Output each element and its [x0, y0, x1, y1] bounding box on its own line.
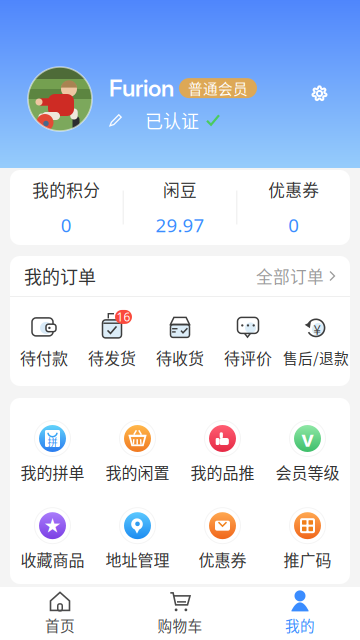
- button[interactable]: 待付款: [10, 314, 78, 369]
- button[interactable]: 首页: [0, 584, 120, 640]
- staticText: 待评价: [224, 346, 272, 369]
- staticText: 待发货: [88, 346, 136, 369]
- staticText: 会员等级: [275, 460, 339, 484]
- button[interactable]: Settings: [310, 84, 329, 103]
- staticText: 推广码: [283, 548, 331, 571]
- button[interactable]: 全部订单: [256, 264, 336, 288]
- staticText: Furion: [109, 74, 174, 102]
- button[interactable]: 我的闲置: [95, 419, 180, 484]
- staticText: 待付款: [20, 346, 68, 369]
- button[interactable]: ★: [10, 507, 95, 571]
- staticText: ★: [43, 514, 61, 537]
- staticText: 0: [61, 213, 72, 237]
- button[interactable]: 推广码: [265, 507, 350, 571]
- staticText: 我的拼单: [20, 460, 84, 484]
- staticText: 优惠券: [268, 177, 319, 202]
- staticText: 普通会员: [188, 77, 248, 99]
- staticText: 购物车: [157, 614, 202, 636]
- staticText: 我的订单: [24, 263, 96, 289]
- staticText: 我的品推: [190, 460, 254, 484]
- staticText: 我的闲置: [105, 460, 169, 484]
- staticText: 0: [288, 213, 299, 237]
- staticText: 29.97: [155, 213, 204, 237]
- button[interactable]: 优惠券: [180, 507, 265, 571]
- button[interactable]: 待评价: [214, 314, 282, 369]
- staticText: 闲豆: [163, 177, 197, 202]
- button[interactable]: ¥: [282, 315, 350, 368]
- button[interactable]: 地址管理: [95, 507, 180, 571]
- button[interactable]: 优惠券: [237, 177, 350, 237]
- staticText: 我的: [285, 614, 315, 636]
- staticText: ¥: [313, 319, 320, 338]
- staticText: 地址管理: [105, 548, 169, 571]
- staticText: 全部订单: [256, 264, 324, 288]
- button[interactable]: 拼: [10, 419, 95, 484]
- button[interactable]: v: [265, 419, 350, 484]
- button[interactable]: 待收货: [146, 314, 214, 369]
- staticText: 16: [116, 309, 130, 325]
- button[interactable]: 我的积分: [10, 177, 123, 237]
- staticText: 售后/退款: [283, 347, 349, 368]
- staticText: 拼: [47, 435, 57, 449]
- staticText: 待收货: [156, 346, 204, 369]
- button[interactable]: 我的品推: [180, 419, 265, 484]
- staticText: 优惠券: [198, 548, 246, 571]
- button[interactable]: 我的: [240, 584, 360, 640]
- staticText: v: [301, 424, 313, 453]
- button[interactable]: 购物车: [120, 584, 240, 640]
- staticText: 首页: [45, 614, 75, 636]
- button[interactable]: 16: [78, 314, 146, 369]
- button[interactable]: 闲豆: [124, 177, 236, 237]
- staticText: 收藏商品: [20, 548, 84, 571]
- staticText: 我的积分: [32, 177, 100, 202]
- staticText: 已认证: [145, 107, 199, 133]
